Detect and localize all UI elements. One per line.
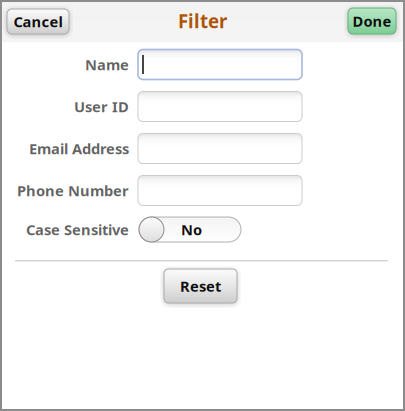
button[interactable]: Cancel: [7, 9, 69, 34]
staticText: Phone Number: [17, 181, 129, 200]
staticText: User ID: [74, 97, 129, 116]
button[interactable]: Done: [348, 8, 396, 34]
button[interactable]: Email Address: [138, 133, 302, 163]
button[interactable]: User ID: [138, 91, 302, 121]
staticText: Email Address: [29, 139, 129, 158]
staticText: Done: [352, 11, 391, 31]
staticText: Reset: [180, 276, 221, 296]
staticText: Case Sensitive: [26, 220, 129, 239]
staticText: No: [181, 220, 202, 239]
staticText: Name: [85, 55, 129, 74]
staticText: Filter: [178, 9, 227, 33]
button[interactable]: Reset: [164, 269, 237, 303]
button[interactable]: Case Sensitive: [139, 217, 241, 242]
button[interactable]: Phone Number: [138, 175, 302, 205]
button[interactable]: Name: [138, 49, 302, 79]
staticText: Cancel: [13, 12, 62, 31]
